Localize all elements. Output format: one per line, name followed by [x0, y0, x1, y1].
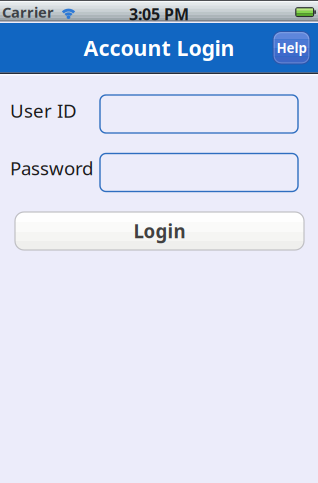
staticText: Password: [10, 155, 93, 180]
staticText: 3:05 PM: [129, 3, 189, 25]
button[interactable]: User ID: [100, 95, 298, 133]
staticText: Account Login: [83, 34, 234, 62]
button[interactable]: Help: [273, 31, 310, 64]
staticText: Login: [133, 219, 185, 243]
staticText: User ID: [10, 98, 77, 123]
staticText: Help: [276, 39, 306, 57]
button[interactable]: Login: [15, 212, 304, 250]
staticText: Carrier: [2, 2, 54, 22]
button[interactable]: Password: [100, 153, 298, 191]
